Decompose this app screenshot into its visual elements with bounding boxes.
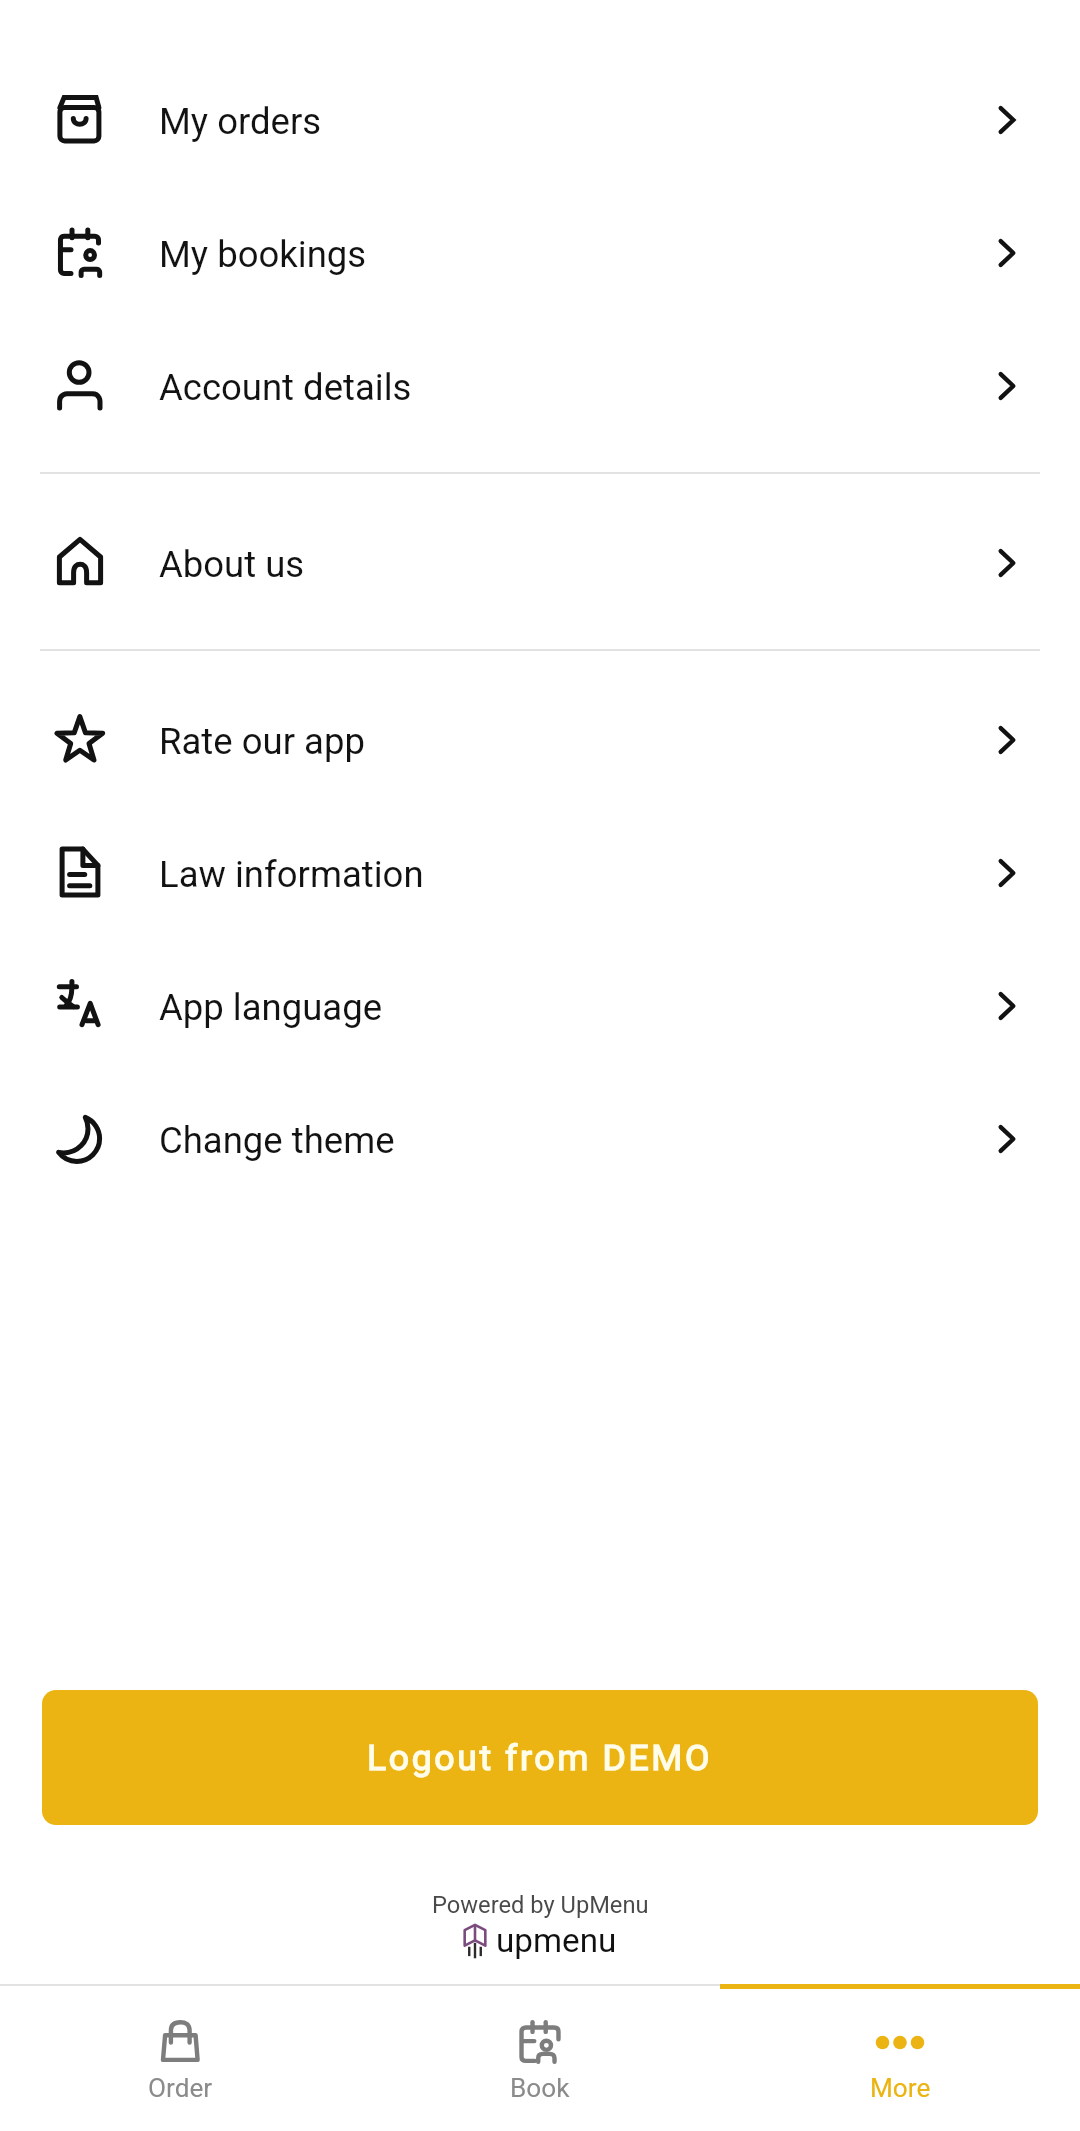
- staticText: Book: [510, 2073, 570, 2104]
- button[interactable]: My orders: [0, 53, 1080, 186]
- button[interactable]: About us: [0, 496, 1080, 629]
- staticText: Powered by UpMenu: [432, 1891, 649, 1919]
- staticText: Rate our app: [159, 720, 365, 763]
- staticText: Logout from DEMO: [367, 1737, 713, 1779]
- staticText: upmenu: [496, 1921, 617, 1960]
- button[interactable]: Change theme: [0, 1072, 1080, 1205]
- staticText: Account details: [159, 366, 412, 409]
- staticText: My bookings: [159, 233, 367, 276]
- button[interactable]: More: [720, 1984, 1080, 2131]
- button[interactable]: Law information: [0, 806, 1080, 939]
- staticText: Order: [148, 2073, 213, 2104]
- button[interactable]: Book: [360, 1984, 720, 2131]
- other: More: [878, 2020, 922, 2064]
- button[interactable]: Order: [0, 1984, 360, 2131]
- staticText: Law information: [159, 853, 424, 896]
- staticText: My orders: [159, 100, 322, 143]
- staticText: App language: [159, 986, 383, 1029]
- staticText: About us: [159, 543, 305, 586]
- button[interactable]: Account details: [0, 319, 1080, 452]
- button[interactable]: My bookings: [0, 186, 1080, 319]
- staticText: More: [870, 2073, 931, 2104]
- staticText: Change theme: [159, 1119, 395, 1162]
- button[interactable]: Logout from DEMO: [42, 1690, 1038, 1825]
- button[interactable]: App language: [0, 939, 1080, 1072]
- button[interactable]: Rate our app: [0, 673, 1080, 806]
